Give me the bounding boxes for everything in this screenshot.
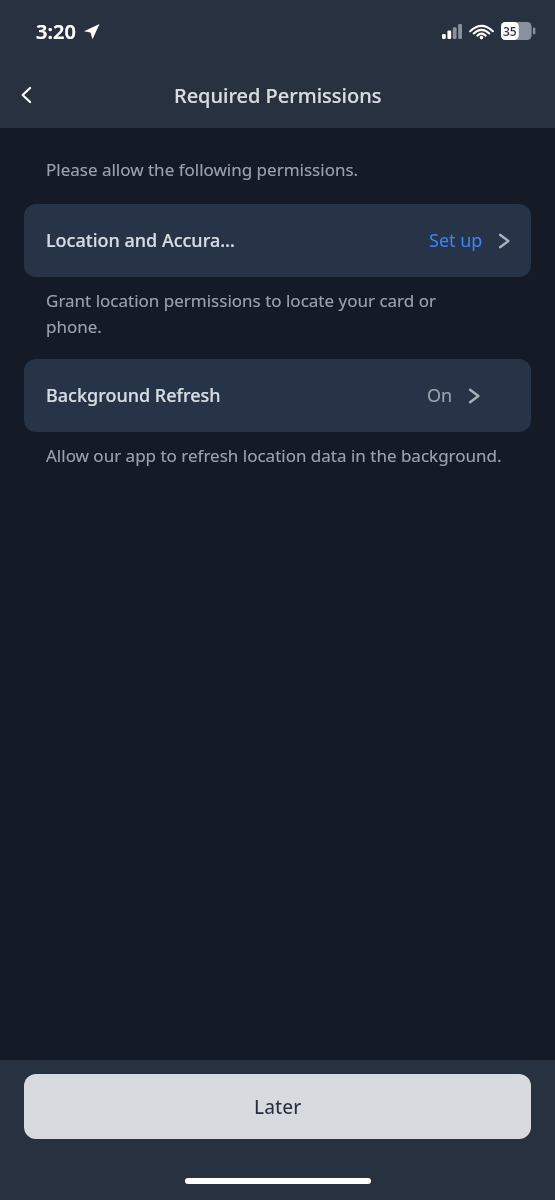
- staticText: Background Refresh: [46, 383, 221, 408]
- staticText: Please allow the following permissions.: [46, 158, 359, 181]
- button[interactable]: Later: [24, 1074, 531, 1139]
- staticText: Later: [254, 1094, 302, 1120]
- staticText: Allow our app to refresh location data i…: [46, 444, 502, 467]
- button[interactable]: Back: [0, 68, 54, 122]
- staticText: Set up: [429, 228, 483, 253]
- staticText: 35: [503, 23, 517, 39]
- staticText: 3:20: [36, 18, 76, 45]
- button[interactable]: Background Refresh: [24, 359, 531, 432]
- staticText: Required Permissions: [174, 82, 382, 109]
- button[interactable]: Location and Accuracy Permis...: [24, 204, 531, 277]
- staticText: On: [427, 383, 453, 408]
- staticText: Location and Accuracy Permis...: [46, 228, 237, 253]
- staticText: Grant location permissions to locate you…: [46, 289, 495, 338]
